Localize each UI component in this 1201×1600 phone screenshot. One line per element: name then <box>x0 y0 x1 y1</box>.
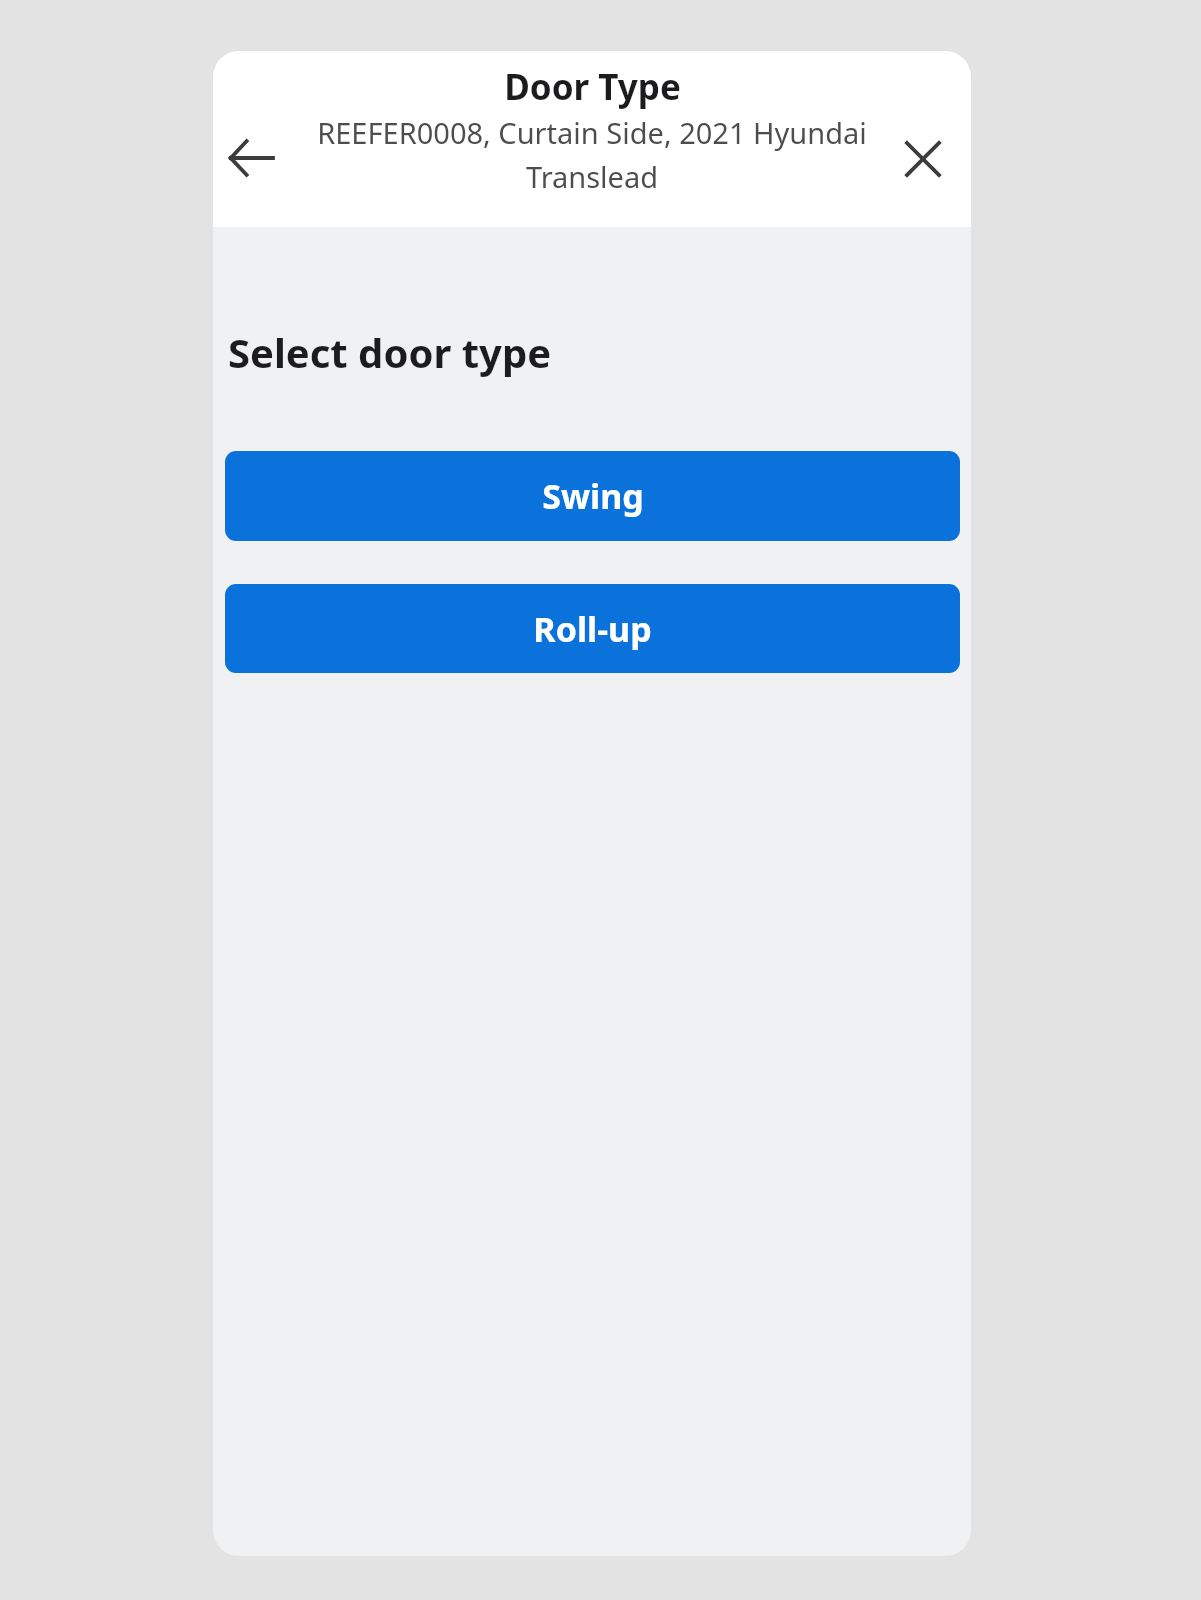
staticText: Swing <box>542 473 644 519</box>
staticText: Door Type <box>504 63 681 111</box>
button[interactable]: Back <box>218 125 284 191</box>
staticText: Roll-up <box>533 606 652 652</box>
staticText: Select door type <box>228 325 552 379</box>
button[interactable]: Swing <box>225 451 960 541</box>
button[interactable]: Roll-up <box>225 584 960 673</box>
staticText: REEFER0008, Curtain Side, 2021 Hyundai T… <box>301 113 883 196</box>
button[interactable]: Close <box>891 127 955 191</box>
